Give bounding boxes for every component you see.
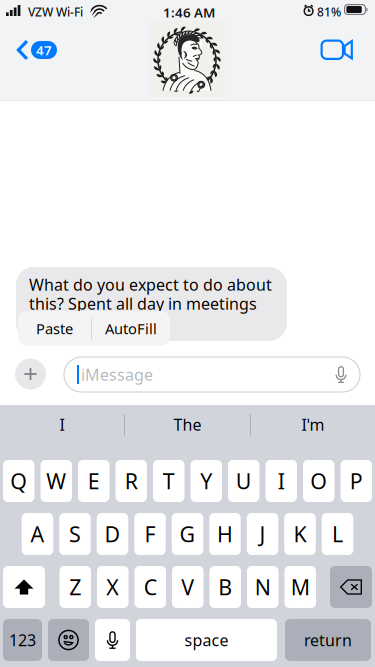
button[interactable]: Delete — [330, 566, 372, 608]
staticText: I — [59, 414, 64, 435]
button[interactable]: More — [15, 358, 46, 389]
button[interactable]: E — [78, 460, 109, 502]
staticText: 123 — [9, 629, 36, 651]
staticText: AutoFill — [105, 319, 157, 338]
button[interactable]: M — [284, 566, 316, 608]
staticText: R — [125, 467, 138, 495]
staticText: W — [46, 467, 66, 495]
staticText: this? Spent all day in meetings — [29, 293, 257, 314]
button[interactable]: H — [209, 513, 241, 555]
button[interactable]: C — [134, 566, 166, 608]
staticText: D — [104, 520, 120, 548]
button[interactable]: V — [172, 566, 203, 608]
staticText: 47 — [36, 41, 52, 59]
button[interactable]: 47 — [15, 33, 77, 67]
staticText: G — [179, 520, 195, 548]
staticText: J — [259, 520, 265, 548]
staticText: as possible — [29, 312, 113, 333]
staticText: The — [173, 414, 201, 435]
button[interactable]: A — [22, 513, 53, 555]
button[interactable]: T — [153, 460, 184, 502]
staticText: Z — [69, 573, 81, 601]
button[interactable]: I'm — [251, 405, 375, 444]
button[interactable]: L — [322, 513, 353, 555]
button[interactable]: 123 — [3, 619, 42, 661]
staticText: X — [106, 573, 119, 601]
button[interactable]: space — [136, 619, 277, 661]
staticText: C — [144, 573, 157, 601]
staticText: M — [291, 573, 310, 601]
staticText: L — [332, 520, 343, 548]
staticText: S — [69, 520, 81, 548]
button[interactable]: W — [40, 460, 72, 502]
button[interactable]: B — [209, 566, 241, 608]
button[interactable]: P — [340, 460, 372, 502]
staticText: P — [350, 467, 363, 495]
staticText: I'm — [301, 414, 324, 435]
staticText: A — [30, 520, 44, 548]
staticText: B — [218, 573, 232, 601]
button[interactable]: AutoFill — [92, 311, 170, 346]
button[interactable]: F — [134, 513, 166, 555]
button[interactable]: O — [303, 460, 334, 502]
button[interactable]: U — [228, 460, 259, 502]
button[interactable]: Y — [190, 460, 222, 502]
button[interactable]: X — [97, 566, 128, 608]
staticText: 1:46 AM — [163, 3, 215, 21]
staticText: T — [163, 467, 175, 495]
button[interactable]: G — [172, 513, 203, 555]
staticText: iMessage — [81, 364, 153, 385]
button[interactable]: I — [265, 460, 297, 502]
staticText: What do you expect to do about — [29, 274, 272, 295]
button[interactable]: Dictation — [95, 619, 130, 661]
button[interactable]: R — [115, 460, 147, 502]
staticText: return — [304, 629, 352, 651]
button[interactable]: I — [0, 405, 124, 444]
staticText: VZW Wi-Fi — [28, 4, 83, 20]
button[interactable]: The — [125, 405, 250, 444]
staticText: 81% — [317, 4, 341, 20]
staticText: V — [181, 573, 194, 601]
button[interactable]: return — [285, 619, 371, 661]
staticText: Y — [200, 467, 212, 495]
staticText: H — [217, 520, 233, 548]
button[interactable]: S — [59, 513, 91, 555]
staticText: K — [293, 520, 306, 548]
button[interactable]: N — [247, 566, 278, 608]
button[interactable]: Q — [3, 460, 34, 502]
staticText: space — [184, 629, 228, 651]
button[interactable]: Paste — [18, 311, 91, 346]
staticText: F — [144, 520, 155, 548]
staticText: U — [236, 467, 252, 495]
button[interactable]: Z — [59, 566, 91, 608]
button[interactable]: K — [284, 513, 316, 555]
button[interactable]: Emoji — [48, 619, 89, 661]
staticText: N — [255, 573, 271, 601]
staticText: I — [278, 467, 285, 495]
button[interactable]: J — [247, 513, 278, 555]
staticText: Q — [10, 467, 27, 495]
button[interactable]: Shift — [3, 566, 45, 608]
staticText: Paste — [36, 319, 73, 338]
staticText: O — [310, 467, 327, 495]
staticText: E — [88, 467, 100, 495]
button[interactable]: D — [97, 513, 128, 555]
button[interactable]: FaceTime — [315, 33, 359, 67]
